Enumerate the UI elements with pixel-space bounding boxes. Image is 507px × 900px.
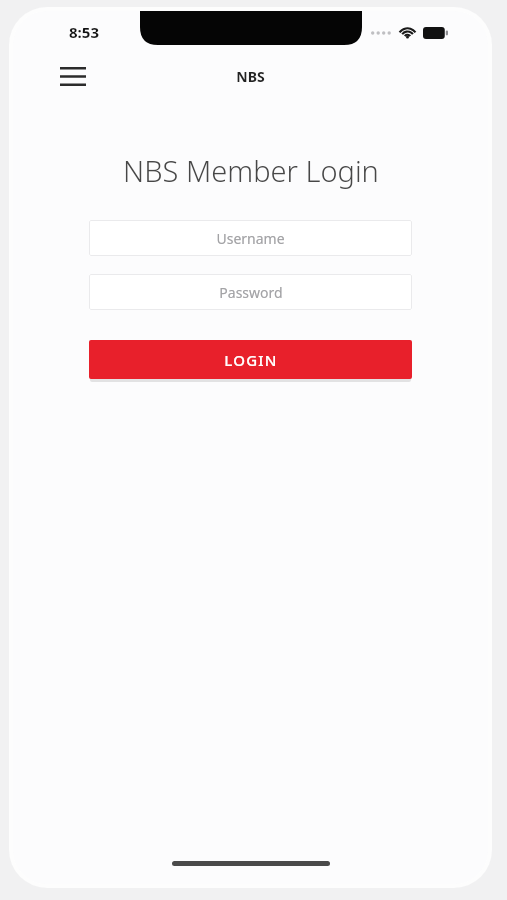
staticText: NBS: [236, 67, 265, 86]
button[interactable]: Username: [89, 220, 412, 256]
button[interactable]: LOGIN: [89, 340, 412, 379]
staticText: NBS Member Login: [123, 151, 379, 190]
staticText: Password: [219, 283, 283, 302]
button[interactable]: Open navigation menu: [55, 58, 91, 94]
staticText: 8:53: [69, 22, 99, 42]
staticText: LOGIN: [224, 350, 278, 370]
staticText: Username: [216, 229, 285, 248]
button[interactable]: Password: [89, 274, 412, 310]
